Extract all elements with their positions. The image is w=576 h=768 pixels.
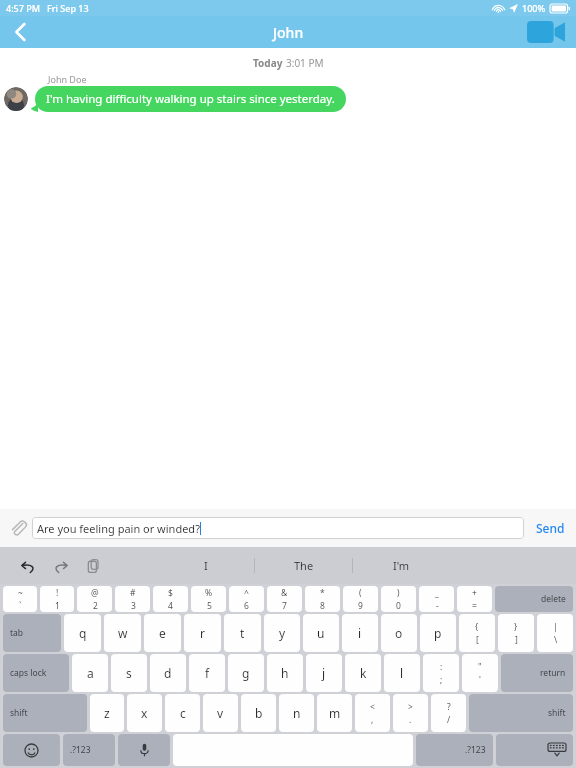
button[interactable]: & — [267, 586, 302, 612]
button[interactable]: u — [303, 614, 339, 652]
button[interactable]: + — [457, 586, 492, 612]
button[interactable]: a — [72, 654, 108, 692]
button[interactable]: kbd — [496, 734, 573, 766]
staticText: shift — [548, 707, 566, 719]
button[interactable]: p — [420, 614, 456, 652]
staticText: * — [320, 587, 325, 599]
staticText: % — [205, 587, 213, 599]
staticText: 1 — [55, 600, 60, 612]
button[interactable]: caps lock — [3, 654, 69, 692]
button[interactable]: g — [228, 654, 264, 692]
button[interactable]: k — [345, 654, 381, 692]
button[interactable]: | — [537, 614, 573, 652]
button[interactable]: j — [306, 654, 342, 692]
button[interactable]: mic — [118, 734, 170, 766]
button[interactable]: Send — [532, 516, 569, 540]
staticText: .?123 — [70, 744, 91, 756]
button[interactable]: l — [384, 654, 420, 692]
staticText: d — [164, 665, 172, 681]
button[interactable]: s — [111, 654, 147, 692]
button[interactable]: I'm — [353, 547, 450, 584]
staticText: @ — [91, 587, 99, 599]
button[interactable]: ? — [431, 694, 466, 732]
staticText: - — [436, 600, 439, 612]
button[interactable]: tab — [3, 614, 61, 652]
staticText: x — [141, 705, 148, 721]
staticText: # — [130, 587, 136, 599]
staticText: 9 — [358, 600, 363, 612]
button[interactable]: } — [498, 614, 534, 652]
button[interactable]: return — [501, 654, 573, 692]
button[interactable]: ^ — [229, 586, 264, 612]
button[interactable]: % — [191, 586, 226, 612]
button[interactable]: h — [267, 654, 303, 692]
button[interactable]: d — [150, 654, 186, 692]
button[interactable]: # — [115, 586, 150, 612]
button[interactable]: ~ — [3, 586, 37, 612]
staticText: q — [79, 625, 87, 641]
button[interactable]: The — [255, 547, 352, 584]
button[interactable]: ) — [381, 586, 416, 612]
button[interactable]: > — [393, 694, 428, 732]
button[interactable]: r — [184, 614, 221, 652]
staticText: I — [204, 558, 208, 573]
button[interactable]: .?123 — [63, 734, 115, 766]
button[interactable]: Back — [0, 16, 40, 48]
button[interactable]: c — [165, 694, 200, 732]
button[interactable]: shift — [3, 694, 87, 732]
button[interactable]: b — [241, 694, 276, 732]
button[interactable]: f — [189, 654, 225, 692]
button[interactable]: ( — [343, 586, 378, 612]
button[interactable]: Video call — [524, 17, 568, 47]
staticText: _ — [435, 587, 439, 599]
staticText: $ — [168, 587, 173, 599]
button[interactable]: * — [305, 586, 340, 612]
staticText: } — [514, 621, 518, 633]
staticText: ' — [479, 674, 481, 686]
button[interactable]: { — [459, 614, 495, 652]
staticText: | — [553, 621, 558, 633]
button[interactable]: " — [462, 654, 498, 692]
button[interactable]: v — [203, 694, 238, 732]
staticText: v — [217, 705, 224, 721]
button[interactable]: x — [127, 694, 162, 732]
staticText: \ — [554, 634, 558, 646]
button[interactable]: Paste — [80, 554, 104, 578]
button[interactable]: Redo — [48, 554, 72, 578]
button[interactable]: Undo — [16, 554, 40, 578]
button[interactable]: I'm having difficulty walking up stairs … — [35, 86, 346, 112]
button[interactable]: z — [90, 694, 124, 732]
staticText: 4:57 PM — [6, 2, 40, 14]
button[interactable]: .?123 — [416, 734, 493, 766]
button[interactable]: _ — [419, 586, 454, 612]
button[interactable]: $ — [153, 586, 188, 612]
button[interactable]: emoji — [3, 734, 60, 766]
button[interactable]: q — [64, 614, 101, 652]
staticText: ^ — [244, 587, 249, 599]
staticText: l — [400, 665, 404, 681]
button[interactable]: o — [381, 614, 417, 652]
staticText: delete — [541, 593, 566, 605]
button[interactable]: w — [104, 614, 141, 652]
button[interactable]: I — [157, 547, 254, 584]
button[interactable]: < — [355, 694, 390, 732]
button[interactable]: ! — [40, 586, 74, 612]
button[interactable]: @ — [77, 586, 112, 612]
button[interactable]: i — [342, 614, 378, 652]
staticText: Fri Sep 13 — [47, 2, 89, 14]
button[interactable]: y — [264, 614, 300, 652]
staticText: , — [371, 714, 374, 726]
button[interactable]: Are you feeling pain or winded? — [32, 517, 524, 539]
button[interactable]: shift — [469, 694, 573, 732]
button[interactable]: : — [423, 654, 459, 692]
button[interactable]: t — [224, 614, 261, 652]
button[interactable]: Attach — [7, 517, 29, 539]
staticText: = — [472, 600, 477, 612]
button[interactable]: e — [144, 614, 181, 652]
staticText: ~ — [18, 587, 23, 599]
staticText: ` — [19, 600, 22, 612]
button[interactable]: delete — [495, 586, 573, 612]
button[interactable]: n — [279, 694, 314, 732]
button[interactable]: m — [317, 694, 352, 732]
